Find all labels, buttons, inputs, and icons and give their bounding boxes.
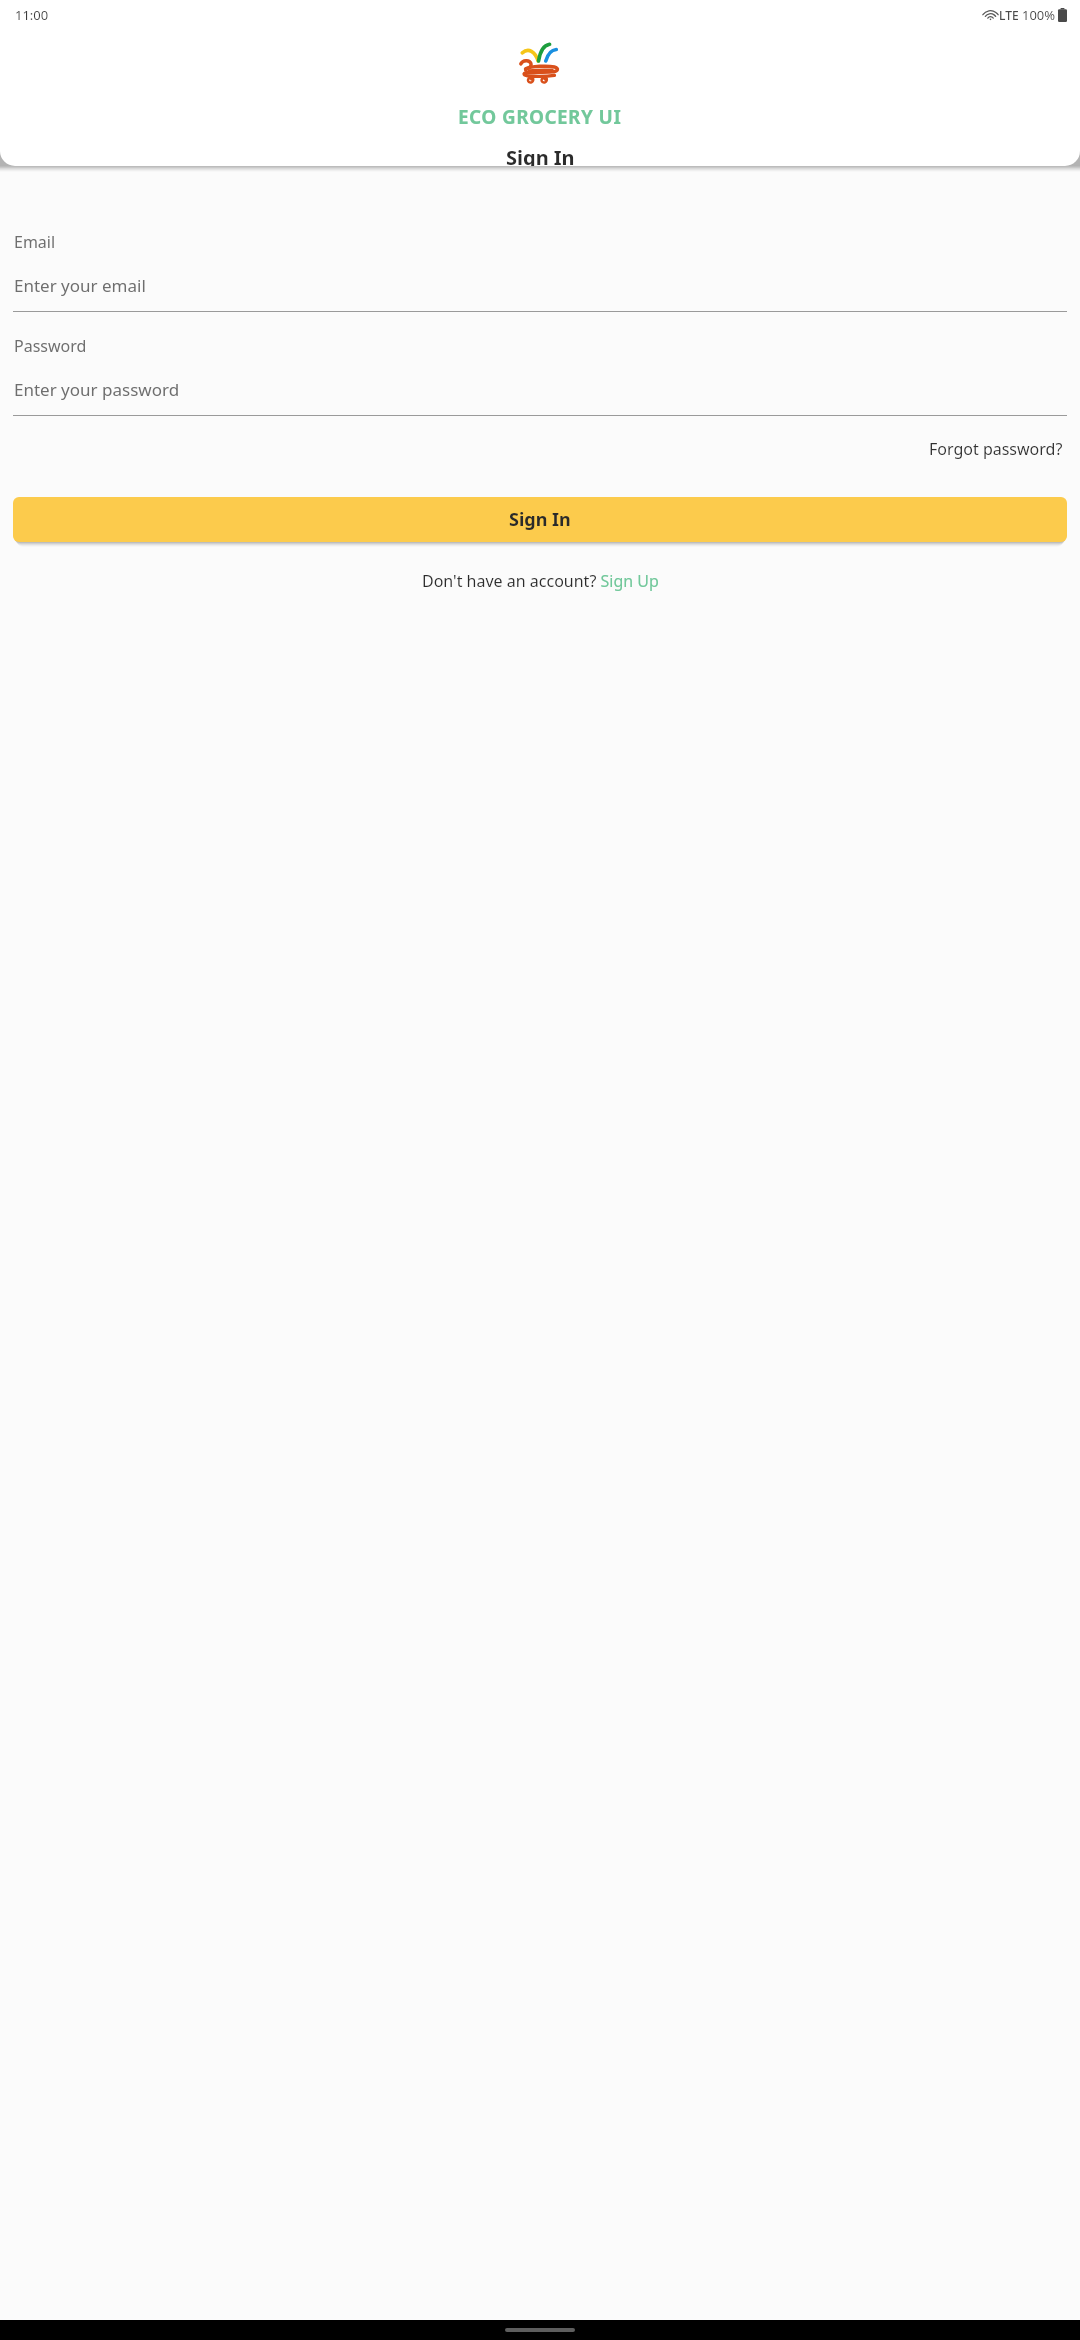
button[interactable]: Sign In: [13, 497, 1067, 542]
button[interactable]: Forgot password?: [925, 434, 1067, 464]
staticText: Sign In: [509, 507, 571, 532]
staticText: 11:00: [15, 6, 49, 24]
staticText: Password: [14, 335, 87, 357]
staticText: Sign In: [506, 144, 575, 166]
button[interactable]: Password: [13, 333, 1067, 416]
staticText: Forgot password?: [929, 438, 1063, 460]
staticText: Don't have an account? Sign Up: [422, 570, 659, 592]
staticText: Email: [14, 231, 56, 253]
staticText: ECO GROCERY UI: [458, 104, 622, 130]
staticText: LTE: [999, 7, 1019, 23]
staticText: 100%: [1022, 6, 1056, 24]
staticText: Enter your email: [14, 274, 146, 297]
button[interactable]: Don't have an account? Sign Up: [418, 567, 663, 595]
button[interactable]: Email: [13, 229, 1067, 312]
staticText: Enter your password: [14, 378, 180, 401]
